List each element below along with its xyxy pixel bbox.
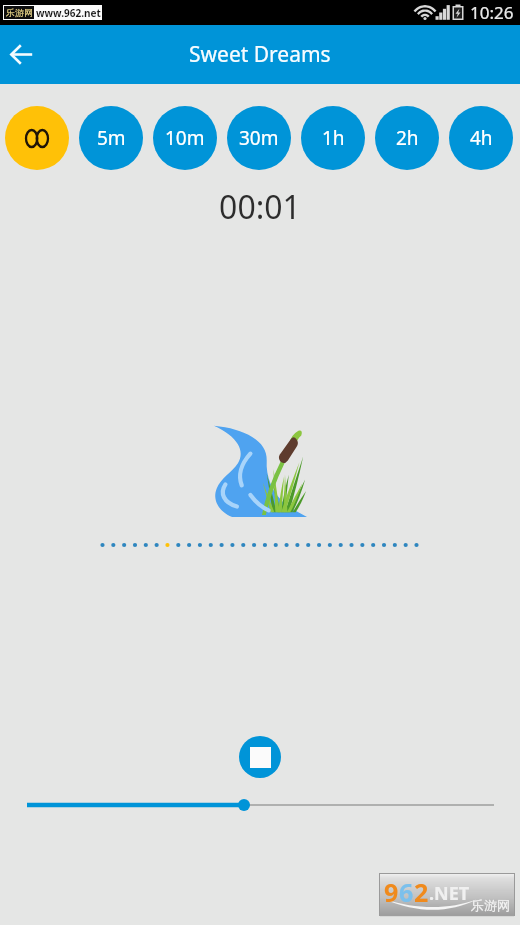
button[interactable]: Volume <box>0 795 520 815</box>
staticText: 2h <box>396 125 419 151</box>
button[interactable]: 1h <box>301 106 365 170</box>
button[interactable]: Back <box>0 25 43 84</box>
staticText: 5m <box>97 125 126 151</box>
staticText: 00:01 <box>0 185 520 229</box>
staticText: 30m <box>239 125 279 151</box>
staticText: 6 <box>399 875 414 909</box>
button[interactable]: Stop <box>239 736 281 778</box>
staticText: .NET <box>429 881 470 906</box>
button[interactable]: 10m <box>153 106 217 170</box>
staticText: 9 <box>384 875 399 909</box>
staticText: www.962.net <box>36 6 101 20</box>
staticText: 乐游网 <box>471 897 510 913</box>
button[interactable]: Infinite duration <box>5 106 69 170</box>
staticText: 乐游网 <box>6 7 33 18</box>
staticText: 1h <box>322 125 345 151</box>
staticText: Sweet Dreams <box>189 40 331 69</box>
staticText: 10:26 <box>470 1 514 24</box>
button[interactable]: 2h <box>375 106 439 170</box>
staticText: 4h <box>470 125 493 151</box>
button[interactable]: 4h <box>449 106 513 170</box>
button[interactable]: 30m <box>227 106 291 170</box>
staticText: 10m <box>165 125 205 151</box>
button[interactable]: 5m <box>79 106 143 170</box>
staticText: 2 <box>414 875 429 909</box>
